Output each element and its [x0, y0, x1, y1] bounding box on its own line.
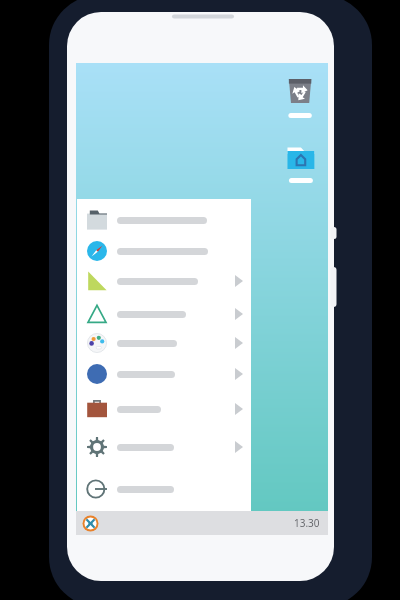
button[interactable]: [77, 359, 251, 389]
staticText: 13.30: [294, 516, 320, 530]
button[interactable]: [77, 394, 251, 424]
button[interactable]: [77, 205, 251, 235]
button[interactable]: [77, 474, 251, 504]
button[interactable]: Home folder: [283, 143, 315, 201]
button[interactable]: Start menu: [82, 515, 99, 532]
button[interactable]: [77, 299, 251, 329]
button[interactable]: Recycle Bin: [286, 77, 318, 135]
button[interactable]: [77, 432, 251, 462]
button[interactable]: [77, 236, 251, 266]
button[interactable]: [77, 266, 251, 296]
button[interactable]: [77, 328, 251, 358]
